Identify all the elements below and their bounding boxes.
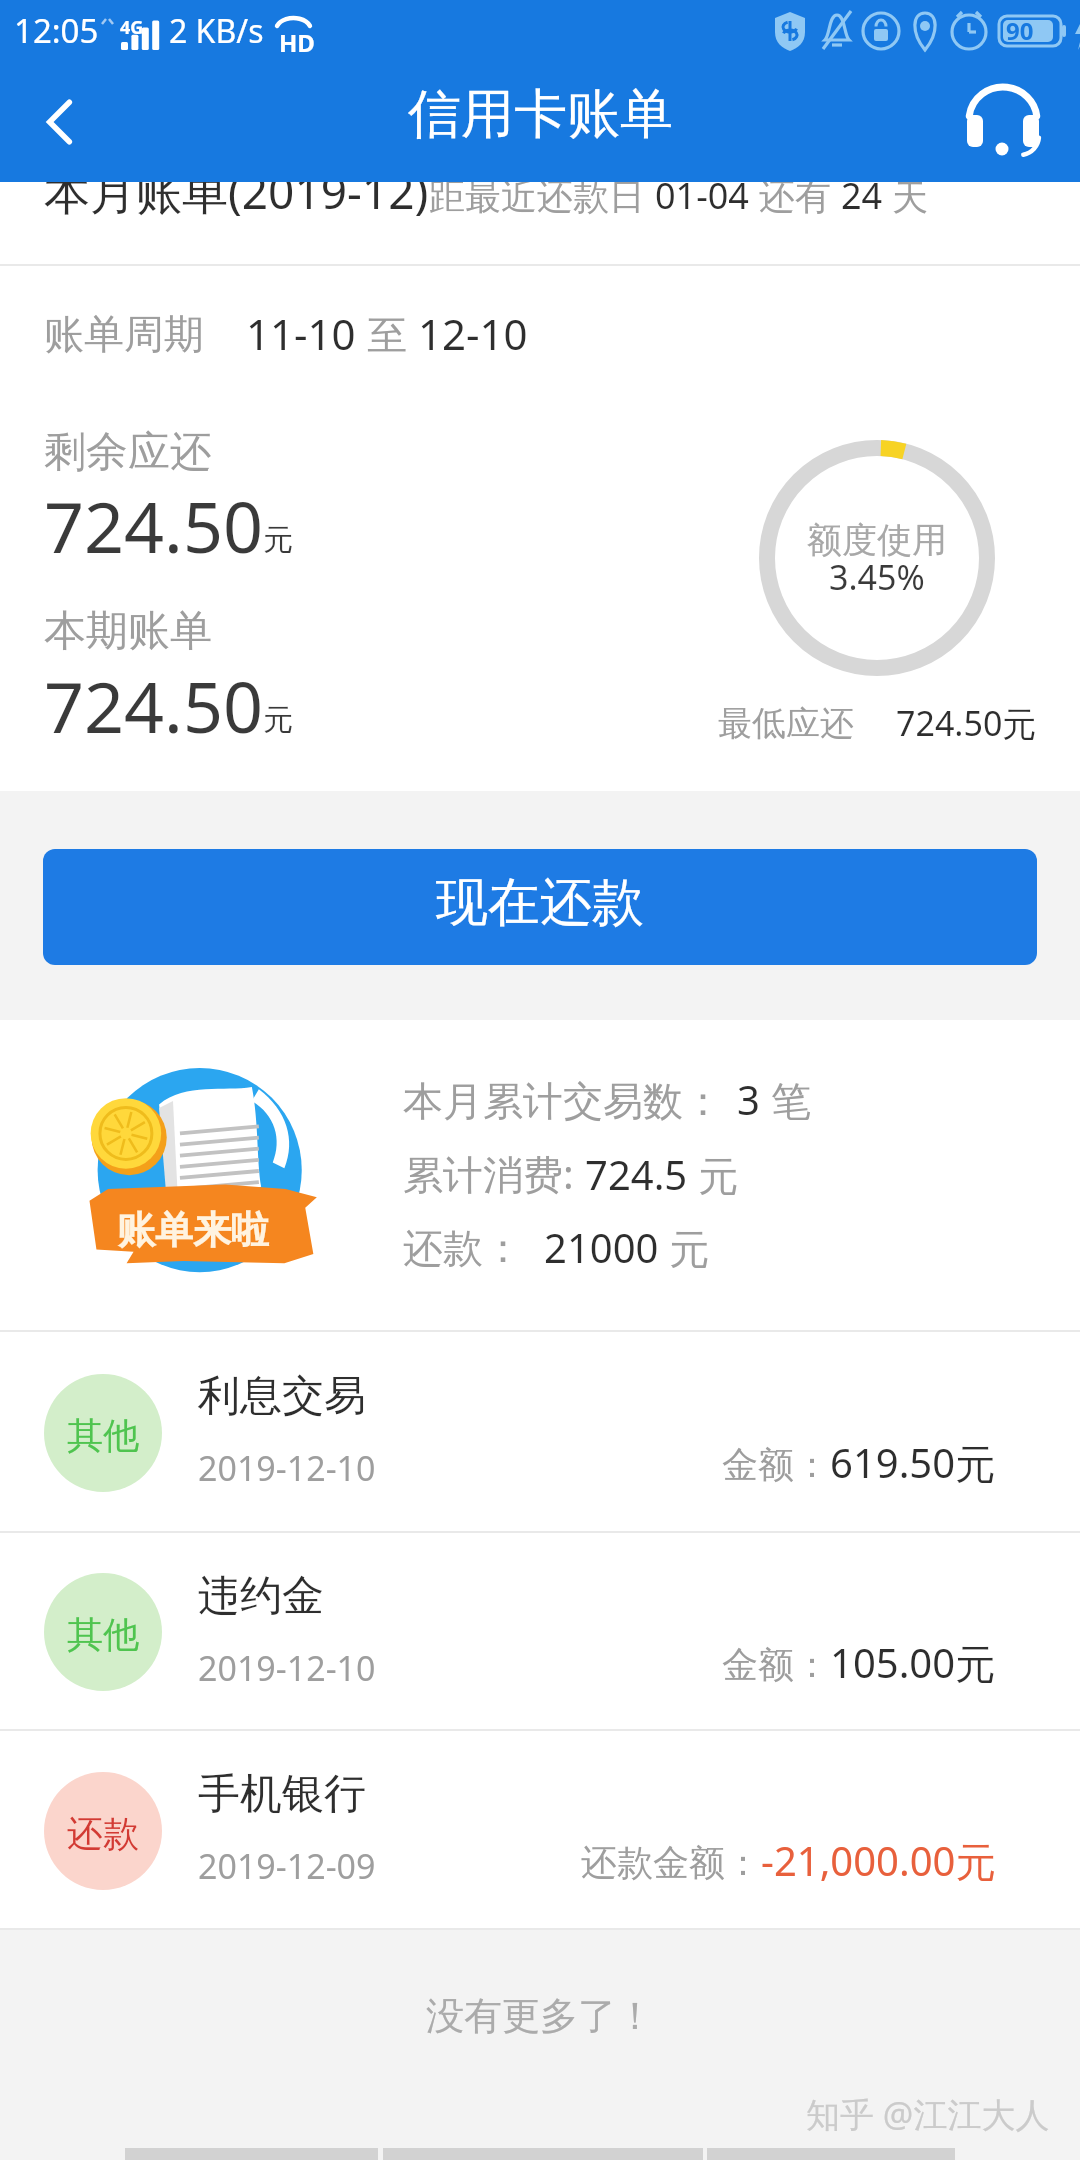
- staticText: 724.5: [585, 1147, 698, 1201]
- staticText: 3: [737, 1072, 771, 1126]
- staticText: 至: [367, 306, 418, 361]
- staticText: 90: [1006, 14, 1034, 47]
- staticText: 账单来啦: [117, 1206, 269, 1254]
- staticText: 距最近还款日: [429, 171, 655, 220]
- staticText: HD: [279, 26, 315, 59]
- staticText: 账单周期: [44, 309, 204, 359]
- staticText: 105.00元: [830, 1635, 996, 1690]
- staticText: 4G: [120, 15, 144, 40]
- button[interactable]: 其他: [0, 1332, 1080, 1533]
- staticText: 619.50元: [830, 1435, 996, 1490]
- staticText: 元: [698, 1151, 738, 1201]
- button[interactable]: 现在还款: [43, 849, 1037, 965]
- staticText: 金额：: [722, 1642, 830, 1687]
- staticText: 元: [263, 701, 293, 739]
- button[interactable]: 还款: [0, 1731, 1080, 1930]
- staticText: 01-04: [655, 171, 759, 220]
- staticText: 其他: [67, 1612, 139, 1657]
- staticText: 额度使用: [807, 518, 947, 562]
- staticText: 笔: [771, 1076, 811, 1126]
- staticText: 本月累计交易数：: [403, 1076, 723, 1126]
- staticText: 21000: [544, 1220, 669, 1274]
- staticText: 剩余应还: [44, 426, 212, 479]
- staticText: 724.50: [44, 658, 263, 753]
- staticText: 还款: [67, 1811, 139, 1856]
- staticText: 2 KB/s: [169, 9, 264, 53]
- staticText: 元: [263, 521, 293, 559]
- staticText: 信用卡账单: [408, 81, 673, 148]
- staticText: 12-10: [418, 305, 528, 362]
- staticText: 金额：: [722, 1442, 830, 1487]
- staticText: 天: [892, 175, 928, 220]
- staticText: 违约金: [198, 1570, 324, 1623]
- staticText: 没有更多了！: [426, 1992, 654, 2040]
- staticText: -21,000.00元: [761, 1833, 996, 1888]
- staticText: 11-10: [246, 305, 367, 362]
- staticText: 本期账单: [44, 605, 212, 658]
- staticText: 知乎 @江江大人: [806, 2091, 1050, 2137]
- staticText: 还款金额：: [581, 1840, 761, 1885]
- staticText: 2019-12-10: [198, 1445, 376, 1491]
- staticText: 2019-12-09: [198, 1843, 376, 1889]
- staticText: 现在还款: [436, 870, 644, 936]
- button[interactable]: 其他: [0, 1533, 1080, 1731]
- staticText: 724.50元: [896, 700, 1037, 746]
- staticText: 元: [669, 1224, 709, 1274]
- staticText: 2019-12-10: [198, 1645, 376, 1691]
- staticText: 手机银行: [198, 1768, 366, 1821]
- button[interactable]: 返回: [0, 62, 120, 182]
- staticText: 本月账单(2019-12): [44, 160, 429, 222]
- staticText: 3.45%: [829, 554, 925, 600]
- staticText: 累计消费:: [403, 1146, 585, 1201]
- staticText: 其他: [67, 1413, 139, 1458]
- staticText: 利息交易: [198, 1370, 366, 1423]
- staticText: 还款：: [403, 1219, 534, 1274]
- staticText: 24: [841, 171, 892, 220]
- staticText: 还有: [759, 171, 841, 220]
- staticText: 最低应还: [718, 702, 854, 745]
- staticText: 12:05: [14, 8, 99, 53]
- staticText: 724.50: [44, 478, 263, 573]
- button[interactable]: 客服: [943, 62, 1063, 182]
